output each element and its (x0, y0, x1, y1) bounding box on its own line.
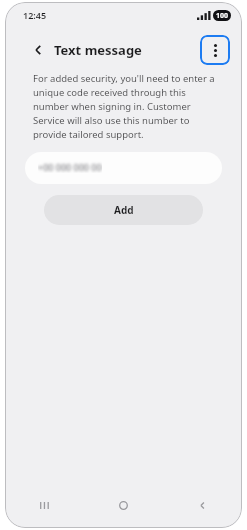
button[interactable]: +00 000 000 00 (25, 152, 222, 184)
button[interactable]: Home (84, 488, 163, 522)
staticText: For added security, you'll need to enter… (33, 72, 222, 141)
staticText: +00 000 000 00 (38, 161, 102, 173)
button[interactable]: More options (200, 35, 230, 65)
button[interactable]: Recents (5, 488, 84, 522)
staticText: 12:45 (23, 9, 47, 21)
button[interactable]: Back (31, 41, 142, 59)
staticText: Text message (54, 41, 142, 59)
staticText: Add (114, 203, 134, 217)
staticText: 100 (216, 11, 229, 21)
other: Back (31, 43, 45, 57)
button[interactable]: Back (163, 488, 242, 522)
button[interactable]: Add (44, 195, 203, 225)
